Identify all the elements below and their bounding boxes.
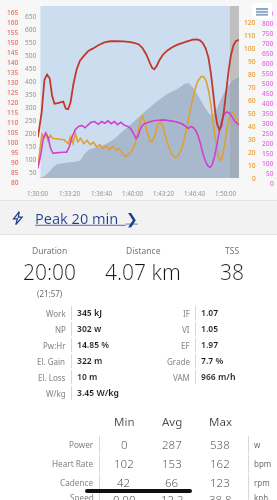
- staticText: 1.07: [201, 307, 219, 319]
- staticText: 40: [248, 122, 256, 131]
- staticText: (21:57): [37, 288, 63, 299]
- staticText: 450: [25, 64, 37, 73]
- staticText: Distance: [126, 245, 161, 257]
- staticText: 200: [25, 129, 37, 138]
- staticText: 1:46:40: [184, 189, 206, 197]
- staticText: 700: [262, 39, 274, 48]
- staticText: 110: [244, 31, 256, 40]
- staticText: Heart Rate: [52, 458, 94, 469]
- staticText: 1:43:20: [153, 189, 175, 197]
- staticText: Min: [114, 414, 135, 430]
- button[interactable]: Chart options menu: [252, 3, 272, 19]
- staticText: Cadence: [60, 477, 94, 488]
- staticText: 42: [117, 475, 131, 491]
- staticText: 90: [11, 158, 19, 167]
- staticText: 1.97: [201, 339, 219, 351]
- staticText: 70: [248, 83, 256, 92]
- staticText: 850: [262, 9, 274, 18]
- staticText: 14.85 %: [77, 339, 110, 351]
- staticText: 20:00: [23, 258, 77, 287]
- staticText: 0: [121, 437, 128, 453]
- staticText: 95: [11, 148, 19, 157]
- staticText: 120: [244, 18, 256, 27]
- staticText: 302 w: [77, 323, 102, 335]
- staticText: Duration: [32, 245, 68, 257]
- staticText: IF: [183, 308, 190, 319]
- staticText: 322 m: [77, 355, 103, 367]
- staticText: 1:40:00: [122, 189, 144, 197]
- staticText: 600: [25, 25, 37, 34]
- staticText: 145: [7, 48, 19, 57]
- staticText: Work: [46, 308, 66, 319]
- staticText: 400: [262, 99, 274, 108]
- staticText: 50: [29, 168, 37, 177]
- staticText: 350: [25, 90, 37, 99]
- staticText: 1.05: [201, 323, 219, 335]
- staticText: 150: [262, 149, 274, 158]
- staticText: 200: [262, 139, 274, 148]
- staticText: 80: [11, 178, 19, 187]
- staticText: Peak 20 min ❯: [35, 208, 138, 228]
- staticText: 0.00: [113, 492, 136, 500]
- staticText: Avg: [162, 414, 183, 430]
- staticText: 1:30:00: [27, 189, 49, 197]
- staticText: 550: [25, 38, 37, 47]
- staticText: 102: [114, 456, 134, 472]
- staticText: VI: [182, 324, 190, 335]
- staticText: 600: [262, 59, 274, 68]
- staticText: NP: [55, 324, 66, 335]
- staticText: 162: [210, 456, 230, 472]
- staticText: 38.8: [209, 492, 232, 500]
- staticText: 125: [7, 88, 19, 97]
- staticText: 165: [7, 8, 19, 17]
- staticText: 120: [7, 98, 19, 107]
- staticText: 105: [7, 128, 19, 137]
- staticText: 4.07 km: [105, 258, 181, 287]
- staticText: Grade: [167, 356, 190, 367]
- staticText: 100: [244, 44, 256, 53]
- staticText: 123: [210, 475, 230, 491]
- staticText: 80: [248, 70, 256, 79]
- staticText: 10 m: [77, 371, 98, 383]
- staticText: 85: [11, 168, 19, 177]
- staticText: 7.7 %: [201, 355, 224, 367]
- staticText: 50: [248, 109, 256, 118]
- staticText: 12.2: [161, 492, 184, 500]
- staticText: rpm: [254, 477, 270, 488]
- staticText: 550: [262, 69, 274, 78]
- staticText: 38: [220, 258, 244, 287]
- staticText: 90: [248, 57, 256, 66]
- staticText: El. Gain: [37, 356, 66, 367]
- staticText: 115: [7, 108, 19, 117]
- staticText: Max: [209, 414, 232, 430]
- staticText: 345 kJ: [77, 307, 103, 319]
- staticText: 800: [262, 19, 274, 28]
- staticText: 110: [7, 118, 19, 127]
- staticText: El. Loss: [38, 372, 66, 383]
- staticText: 150: [25, 142, 37, 151]
- staticText: 400: [25, 77, 37, 86]
- staticText: 500: [262, 79, 274, 88]
- staticText: 650: [25, 12, 37, 21]
- staticText: w: [254, 439, 261, 450]
- staticText: 0: [270, 179, 274, 188]
- staticText: 287: [162, 437, 182, 453]
- staticText: bpm: [254, 458, 272, 469]
- staticText: 66: [165, 475, 179, 491]
- staticText: 130: [7, 78, 19, 87]
- staticText: 153: [162, 456, 182, 472]
- staticText: 966 m/h: [201, 371, 236, 383]
- staticText: 1:36:40: [91, 189, 113, 197]
- button[interactable]: Peak 20 min ❯: [0, 201, 277, 234]
- staticText: 30: [248, 135, 256, 144]
- staticText: 450: [262, 89, 274, 98]
- staticText: 538: [210, 437, 230, 453]
- staticText: EF: [181, 340, 190, 351]
- staticText: 500: [25, 51, 37, 60]
- staticText: 350: [262, 109, 274, 118]
- staticText: 1:50:00: [215, 189, 237, 197]
- staticText: 20: [248, 148, 256, 157]
- staticText: 250: [262, 129, 274, 138]
- staticText: 60: [248, 96, 256, 105]
- staticText: 750: [262, 29, 274, 38]
